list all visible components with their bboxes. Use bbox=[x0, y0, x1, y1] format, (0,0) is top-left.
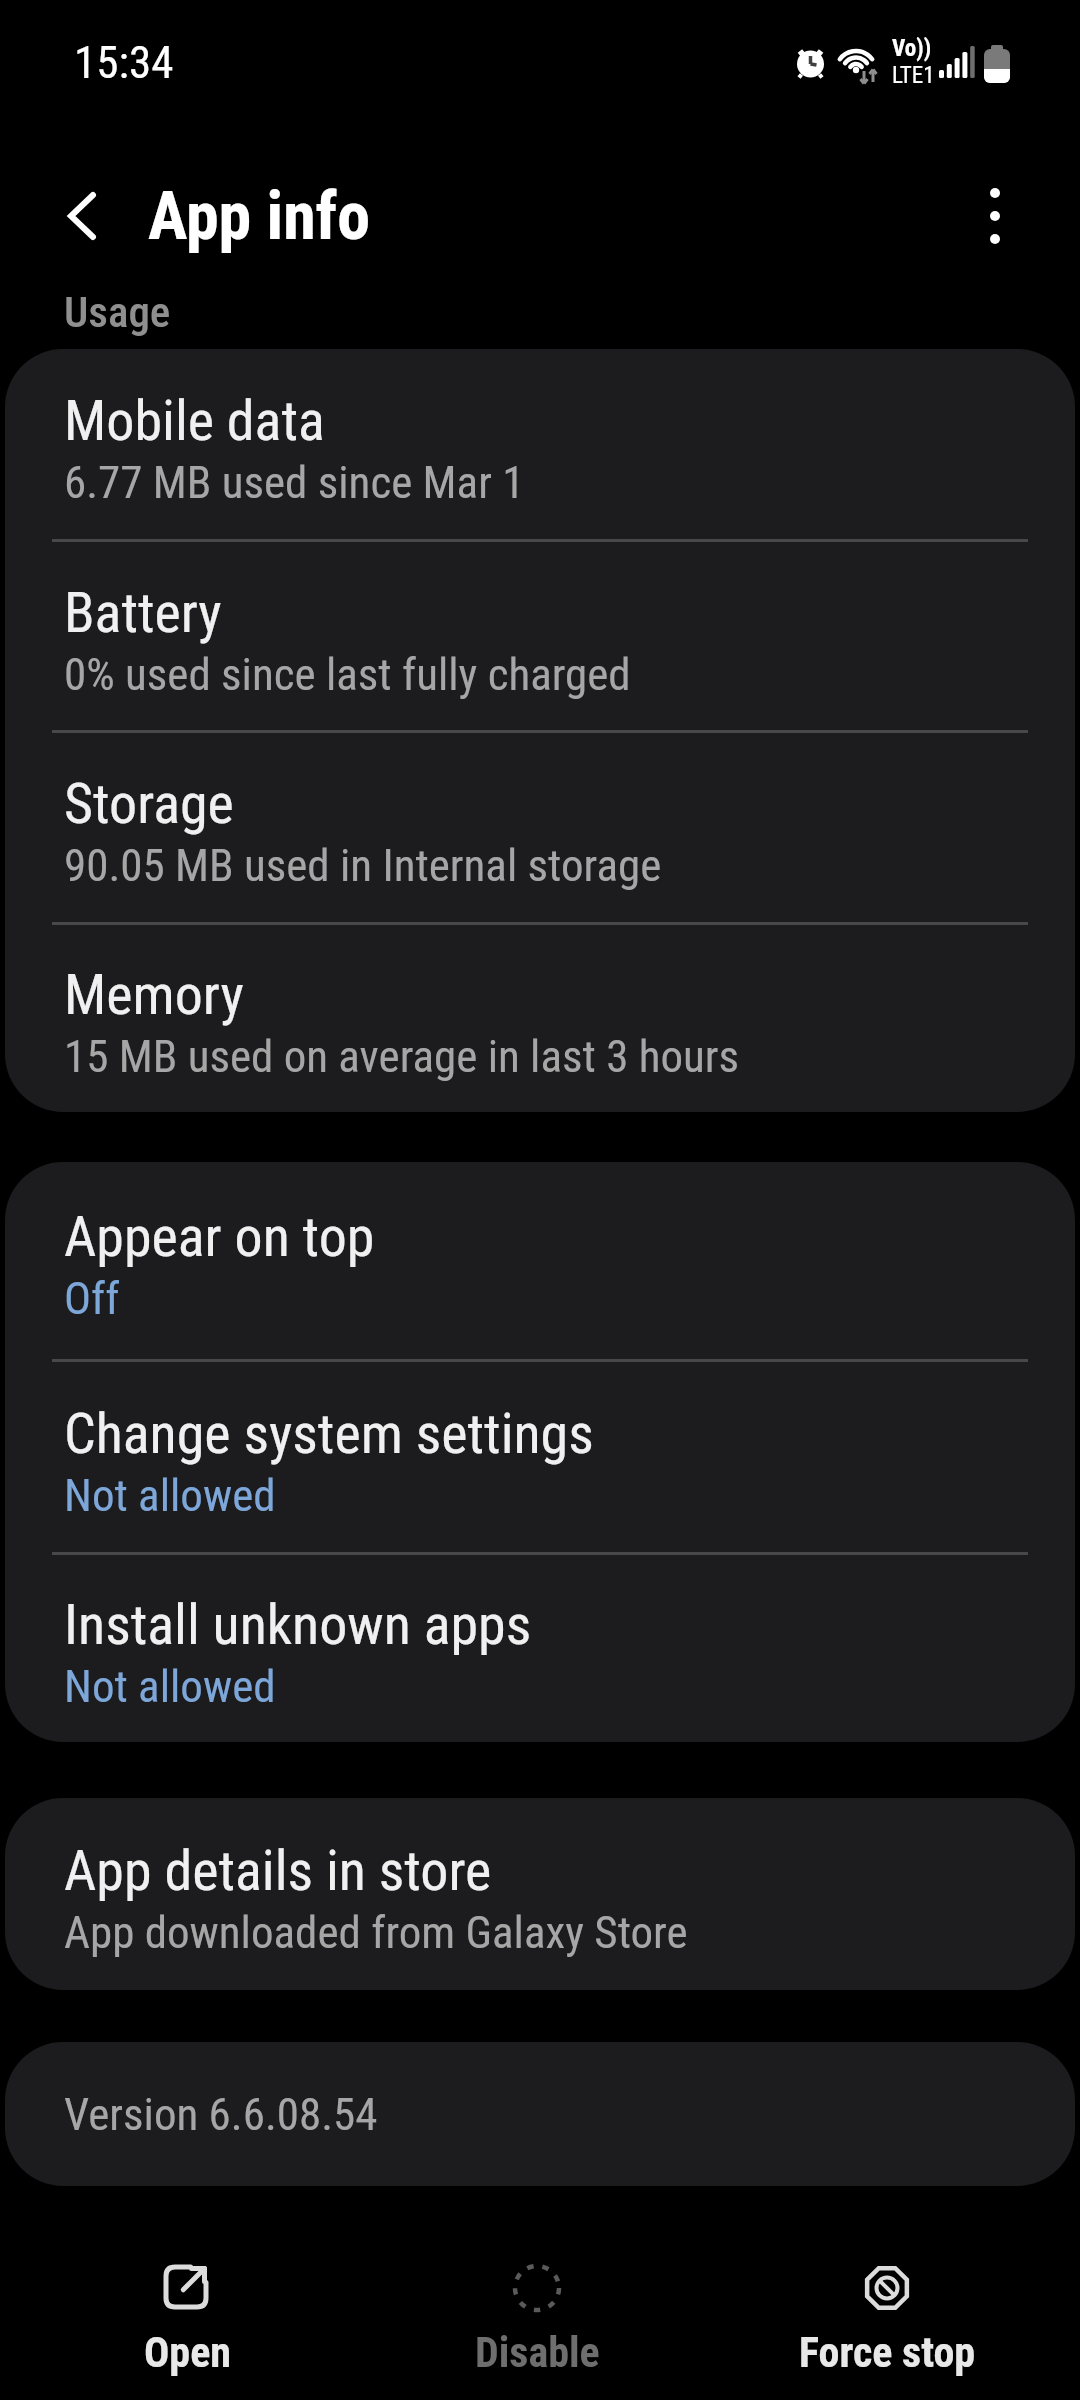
staticText: 15:34 bbox=[74, 36, 174, 89]
button[interactable]: Change system settings bbox=[5, 1362, 1075, 1552]
staticText: Battery bbox=[64, 580, 222, 646]
staticText: Vo)) bbox=[892, 35, 932, 62]
staticText: Memory bbox=[64, 962, 244, 1028]
staticText: Version 6.6.08.54 bbox=[64, 2088, 378, 2141]
button[interactable]: Disable bbox=[362, 2230, 712, 2400]
button[interactable]: Appear on top bbox=[5, 1162, 1075, 1359]
button[interactable]: Mobile data bbox=[5, 349, 1075, 539]
staticText: LTE1 bbox=[892, 62, 935, 89]
staticText: Off bbox=[64, 1272, 120, 1325]
staticText: Usage bbox=[64, 287, 171, 337]
staticText: Force stop bbox=[799, 2328, 976, 2377]
staticText: Storage bbox=[64, 771, 234, 837]
staticText: App info bbox=[148, 178, 371, 255]
staticText: Not allowed bbox=[64, 1469, 276, 1522]
staticText: Disable bbox=[475, 2328, 600, 2377]
staticText: Appear on top bbox=[64, 1204, 375, 1270]
button[interactable]: Battery bbox=[5, 542, 1075, 730]
staticText: 90.05 MB used in Internal storage bbox=[64, 839, 662, 892]
staticText: Mobile data bbox=[64, 388, 325, 454]
button[interactable] bbox=[46, 181, 116, 251]
button[interactable]: Storage bbox=[5, 733, 1075, 922]
staticText: Not allowed bbox=[64, 1660, 276, 1713]
staticText: Install unknown apps bbox=[64, 1592, 532, 1658]
staticText: 15 MB used on average in last 3 hours bbox=[64, 1030, 739, 1083]
button[interactable]: Force stop bbox=[712, 2230, 1062, 2400]
button[interactable]: App details in store bbox=[5, 1798, 1075, 1990]
staticText: Change system settings bbox=[64, 1401, 594, 1467]
button[interactable] bbox=[960, 181, 1030, 251]
button[interactable]: Open bbox=[12, 2230, 362, 2400]
button[interactable]: Install unknown apps bbox=[5, 1555, 1075, 1742]
staticText: 0% used since last fully charged bbox=[64, 648, 631, 701]
button[interactable]: Version 6.6.08.54 bbox=[5, 2042, 1075, 2186]
staticText: Open bbox=[144, 2328, 231, 2377]
staticText: App details in store bbox=[64, 1838, 492, 1904]
staticText: 6.77 MB used since Mar 1 bbox=[64, 456, 525, 509]
button[interactable]: Memory bbox=[5, 925, 1075, 1112]
staticText: App downloaded from Galaxy Store bbox=[64, 1906, 688, 1959]
